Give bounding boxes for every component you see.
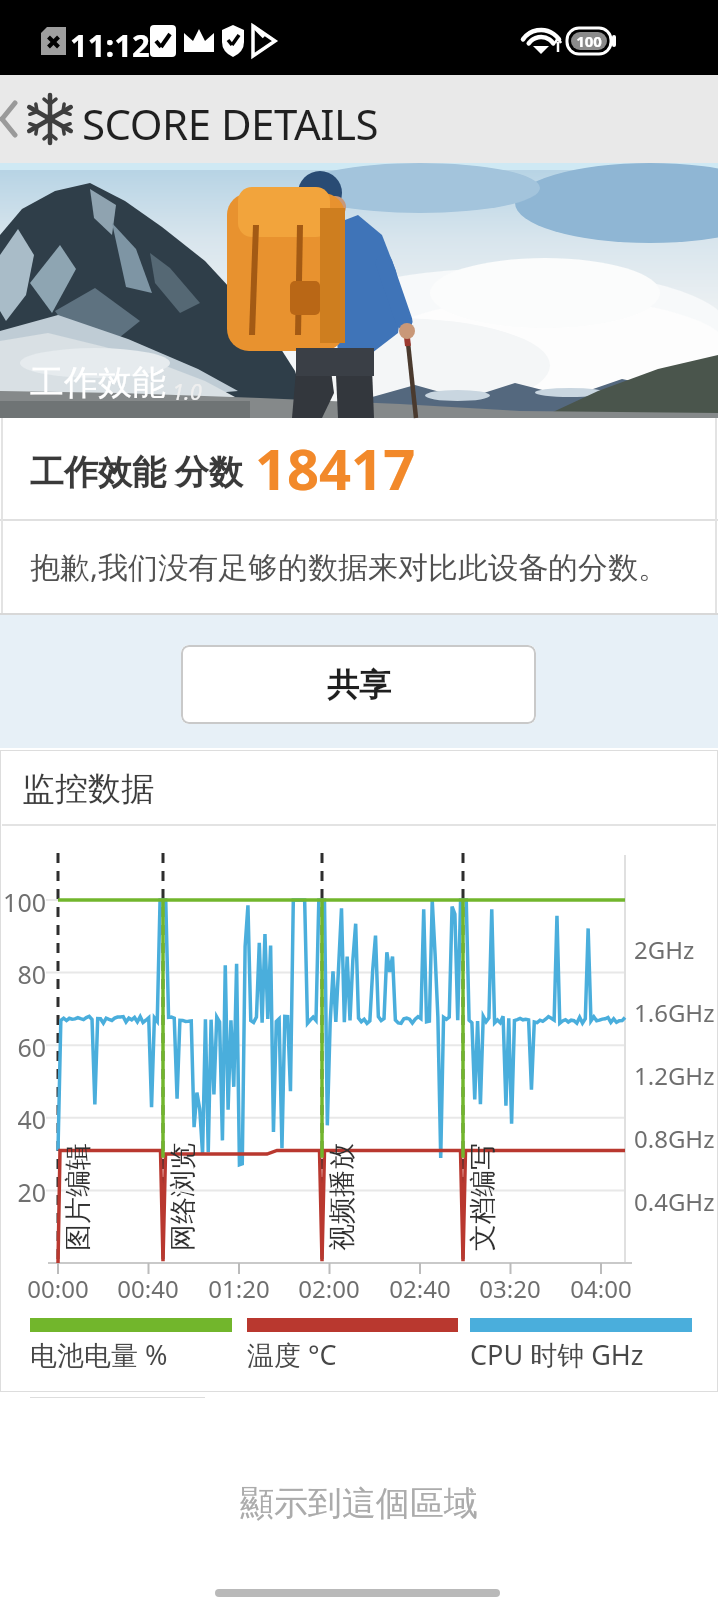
staticText: 网络浏览	[166, 1143, 200, 1251]
staticText: 电池电量 %	[30, 1336, 168, 1373]
staticText: 视频播放	[325, 1143, 359, 1251]
staticText: 03:20	[470, 1272, 550, 1305]
staticText: CPU 时钟 GHz	[470, 1336, 644, 1373]
staticText: 监控数据	[22, 768, 154, 810]
staticText: 18417	[255, 430, 416, 506]
button[interactable]	[215, 1589, 500, 1597]
staticText: 温度 °C	[247, 1336, 337, 1373]
staticText: 04:00	[561, 1272, 641, 1305]
button[interactable]: 共享	[181, 645, 536, 724]
staticText: 图片编辑	[61, 1143, 95, 1251]
staticText: 02:40	[380, 1272, 460, 1305]
staticText: 20	[0, 1175, 46, 1209]
staticText: 文档编写	[466, 1143, 500, 1251]
staticText: SCORE DETAILS	[82, 95, 379, 152]
staticText: 00:00	[18, 1272, 98, 1305]
staticText: 60	[0, 1030, 46, 1064]
staticText: 100	[0, 885, 46, 919]
staticText: 01:20	[199, 1272, 279, 1305]
staticText: 0.4GHz	[634, 1185, 715, 1218]
staticText: 顯示到這個區域	[0, 1482, 718, 1525]
staticText: 40	[0, 1102, 46, 1136]
button[interactable]: SCORE DETAILS	[0, 75, 718, 163]
staticText: 1.0	[172, 376, 202, 406]
staticText: 80	[0, 957, 46, 991]
staticText: 共享	[327, 665, 391, 705]
staticText: 1.6GHz	[634, 996, 715, 1029]
staticText: 抱歉,我们没有足够的数据来对比此设备的分数。	[30, 546, 669, 587]
staticText: 0.8GHz	[634, 1122, 715, 1155]
staticText: 工作效能 分数	[30, 448, 243, 494]
staticText: 工作效能	[30, 361, 166, 404]
staticText: 11:12	[70, 24, 150, 66]
staticText: 02:00	[289, 1272, 369, 1305]
staticText: 1.2GHz	[634, 1059, 715, 1092]
staticText: 00:40	[108, 1272, 188, 1305]
staticText: 2GHz	[634, 933, 695, 966]
staticText: 100	[571, 31, 607, 51]
